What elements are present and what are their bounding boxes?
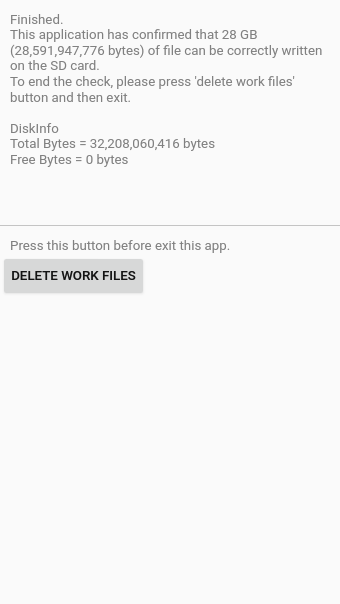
staticText: DiskInfo bbox=[10, 121, 59, 137]
staticText: Finished. bbox=[10, 12, 64, 28]
staticText: This application has confirmed that 28 G… bbox=[10, 27, 258, 43]
staticText: DELETE WORK FILES bbox=[11, 268, 136, 284]
staticText: Free Bytes = 0 bytes bbox=[10, 152, 129, 168]
staticText: DELETE WORK FILES bbox=[11, 268, 136, 284]
staticText: button and then exit. bbox=[10, 90, 132, 106]
button[interactable]: DELETE WORK FILES bbox=[4, 259, 143, 293]
staticText: on the SD card. bbox=[10, 58, 100, 74]
staticText: (28,591,947,776 bytes) of file can be co… bbox=[10, 43, 323, 59]
staticText: Press this button before exit this app. bbox=[10, 238, 231, 254]
staticText: Total Bytes = 32,208,060,416 bytes bbox=[10, 136, 216, 152]
staticText: To end the check, please press 'delete w… bbox=[10, 74, 295, 90]
